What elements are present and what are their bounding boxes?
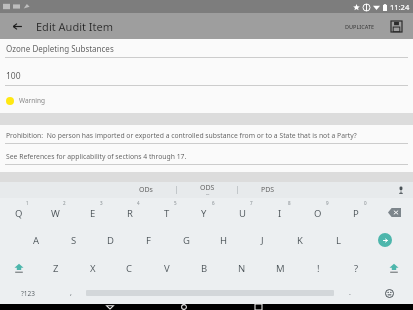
staticText: E xyxy=(90,207,96,220)
staticText: R xyxy=(127,207,133,220)
staticText: H xyxy=(220,234,228,247)
button[interactable]: , xyxy=(55,282,86,304)
staticText: A xyxy=(33,234,40,247)
button[interactable]: A xyxy=(18,226,55,254)
staticText: ODs xyxy=(139,185,153,195)
staticText: Q xyxy=(15,207,23,220)
button[interactable]: W xyxy=(37,198,74,226)
button[interactable]: I xyxy=(261,198,299,226)
button[interactable]: U xyxy=(223,198,261,226)
staticText: K xyxy=(297,234,303,247)
staticText: C xyxy=(126,262,133,275)
staticText: U xyxy=(239,207,246,220)
staticText: Ozone Depleting Substances xyxy=(6,43,114,54)
staticText: T xyxy=(164,207,170,220)
staticText: X xyxy=(90,262,96,275)
staticText: 9 xyxy=(326,200,329,206)
button[interactable]: V xyxy=(148,254,185,282)
button[interactable]: Shift xyxy=(375,254,413,282)
button[interactable]: ! xyxy=(299,254,337,282)
button[interactable]: B xyxy=(185,254,223,282)
button[interactable]: F xyxy=(129,226,167,254)
staticText: D xyxy=(107,234,114,247)
staticText: 0 xyxy=(364,200,367,206)
button[interactable]: Space xyxy=(86,288,334,298)
staticText: 2 xyxy=(63,200,66,206)
button[interactable]: See References for applicability of sect… xyxy=(0,152,413,165)
button[interactable]: G xyxy=(167,226,205,254)
button[interactable]: K xyxy=(281,226,319,254)
staticText: V xyxy=(164,262,170,275)
staticText: Prohibition: No person has imported or e… xyxy=(6,131,357,140)
button[interactable]: ODS xyxy=(177,183,237,197)
staticText: S xyxy=(71,234,77,247)
button[interactable]: N xyxy=(223,254,261,282)
button[interactable]: PDS xyxy=(238,185,298,195)
button[interactable]: DUPLICATE xyxy=(341,20,379,33)
button[interactable]: H xyxy=(205,226,243,254)
button[interactable]: P xyxy=(337,198,375,226)
button[interactable]: Back xyxy=(8,17,26,35)
button[interactable]: T xyxy=(148,198,185,226)
button[interactable]: S xyxy=(55,226,92,254)
button[interactable]: Emoji xyxy=(365,282,413,304)
button[interactable]: L xyxy=(319,226,357,254)
button[interactable]: Home xyxy=(147,304,221,310)
staticText: 8 xyxy=(288,200,291,206)
button[interactable]: E xyxy=(74,198,111,226)
staticText: 1 xyxy=(26,200,29,206)
button[interactable]: Enter xyxy=(357,226,413,254)
staticText: ODS xyxy=(200,183,215,193)
staticText: ?123 xyxy=(21,289,35,298)
button[interactable]: ODs xyxy=(116,185,176,195)
staticText: 3 xyxy=(100,200,103,206)
button[interactable]: J xyxy=(243,226,281,254)
button[interactable]: Q xyxy=(0,198,37,226)
button[interactable]: ? xyxy=(337,254,375,282)
staticText: DUPLICATE xyxy=(345,23,375,30)
staticText: 7 xyxy=(250,200,253,206)
button[interactable]: O xyxy=(299,198,337,226)
staticText: W xyxy=(51,207,60,220)
staticText: , xyxy=(70,288,72,298)
button[interactable]: Backspace xyxy=(375,198,413,226)
staticText: 4 xyxy=(137,200,140,206)
button[interactable]: Warning xyxy=(6,96,413,105)
staticText: ! xyxy=(317,262,320,275)
button[interactable]: Prohibition: No person has imported or e… xyxy=(0,131,413,144)
staticText: Warning xyxy=(19,96,45,105)
button[interactable]: Recent apps xyxy=(221,304,295,310)
staticText: F xyxy=(146,234,151,247)
button[interactable]: X xyxy=(74,254,111,282)
staticText: O xyxy=(314,207,322,220)
button[interactable]: 100 xyxy=(0,70,413,86)
button[interactable]: Voice input xyxy=(395,184,407,196)
button[interactable]: D xyxy=(92,226,129,254)
staticText: B xyxy=(201,262,208,275)
staticText: See References for applicability of sect… xyxy=(6,152,187,161)
button[interactable]: Ozone Depleting Substances xyxy=(0,43,413,58)
button[interactable]: C xyxy=(111,254,148,282)
button[interactable]: Y xyxy=(185,198,223,226)
button[interactable]: Save xyxy=(387,17,405,35)
button[interactable]: Z xyxy=(37,254,74,282)
staticText: P xyxy=(353,207,359,220)
staticText: ••• xyxy=(206,193,210,197)
staticText: 5 xyxy=(174,200,177,206)
staticText: 6 xyxy=(212,200,215,206)
staticText: G xyxy=(183,234,190,247)
button[interactable]: R xyxy=(111,198,148,226)
staticText: Edit Audit Item xyxy=(36,19,113,34)
staticText: J xyxy=(261,234,264,247)
staticText: I xyxy=(278,207,282,220)
staticText: ? xyxy=(354,262,359,275)
button[interactable]: Shift xyxy=(0,254,37,282)
button[interactable]: Back xyxy=(73,304,147,310)
staticText: PDS xyxy=(261,185,275,195)
staticText: L xyxy=(336,234,341,247)
button[interactable]: ?123 xyxy=(0,282,55,304)
staticText: . xyxy=(349,288,351,298)
button[interactable]: M xyxy=(261,254,299,282)
staticText: N xyxy=(238,262,246,275)
